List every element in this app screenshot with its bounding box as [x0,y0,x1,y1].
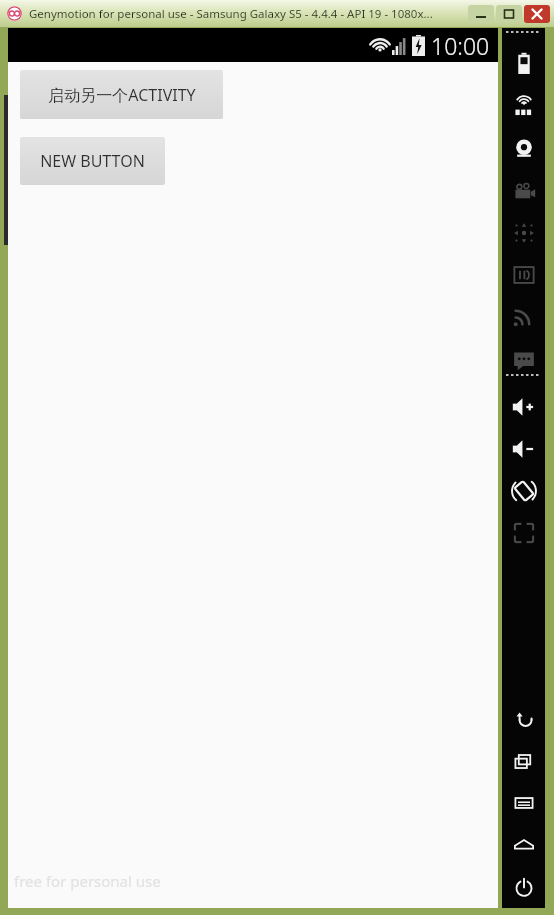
button[interactable]: Menu [502,782,545,824]
staticText: NEW BUTTON [40,150,145,172]
button[interactable]: GPS [502,86,545,128]
button[interactable]: Battery [502,42,545,84]
staticText: 10:00 [431,30,490,61]
button[interactable]: NEW BUTTON [20,137,165,185]
staticText: free for personal use [14,871,161,891]
staticText: 启动另一个ACTIVITY [48,84,196,106]
button[interactable]: 启动另一个ACTIVITY [20,70,223,119]
button[interactable]: Identifiers [502,254,545,296]
button[interactable]: Close [524,5,550,23]
staticText: Genymotion for personal use - Samsung Ga… [29,6,433,22]
button[interactable]: Fullscreen [502,512,545,554]
button[interactable]: Rotate screen [502,470,545,512]
button[interactable]: Volume up [502,386,545,428]
button[interactable]: Volume down [502,428,545,470]
button[interactable]: Home [502,824,545,866]
button[interactable]: Back [502,698,545,740]
button[interactable]: Minimize [468,5,494,23]
button[interactable]: Video recorder [502,170,545,212]
button[interactable]: Camera [502,128,545,170]
button[interactable]: Accelerometer [502,212,545,254]
button[interactable]: Messages [502,338,545,380]
button[interactable]: Recent apps [502,740,545,782]
button[interactable]: Power [502,866,545,908]
button[interactable]: Network [502,296,545,338]
button[interactable]: Maximize [496,5,522,23]
